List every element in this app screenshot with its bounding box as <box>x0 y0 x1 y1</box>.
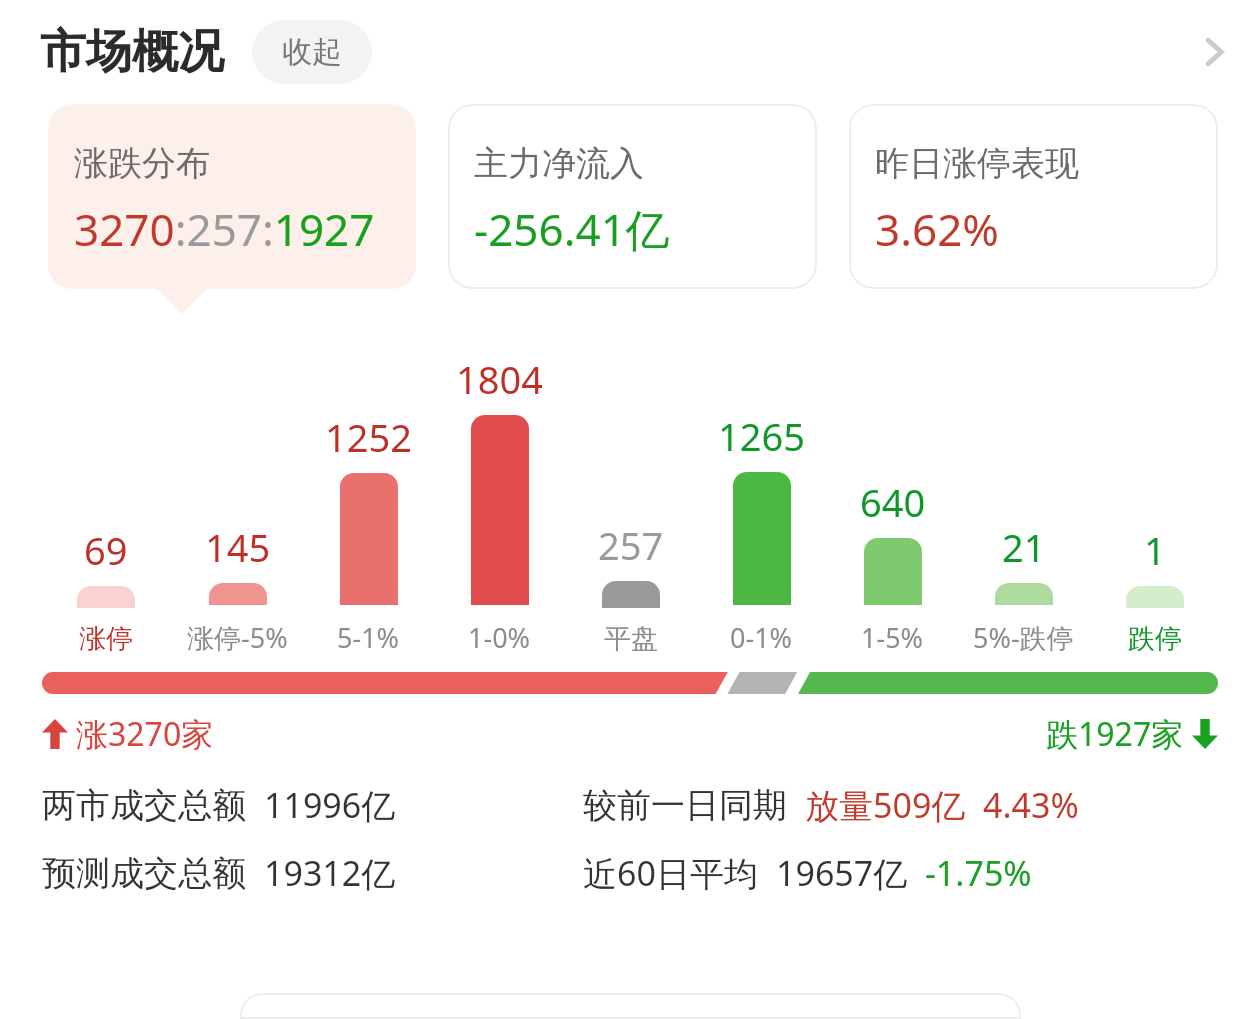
staticText: -256.41亿 <box>474 199 670 259</box>
staticText: 涨跌分布 <box>74 142 210 185</box>
staticText: 跌停 <box>1128 622 1182 656</box>
staticText: 平盘 <box>604 622 658 656</box>
staticText: 145 <box>205 521 271 573</box>
staticText: 市场概况 <box>40 23 224 81</box>
staticText: 3.62% <box>875 199 999 259</box>
staticText: 5-1% <box>337 619 400 656</box>
staticText: 640 <box>860 476 926 528</box>
staticText: 11996亿 <box>264 782 396 828</box>
staticText: 3270:257:1927 <box>74 199 375 259</box>
staticText: 涨停 <box>79 622 133 656</box>
button[interactable]: 查看更多 <box>1178 16 1250 88</box>
staticText: 1252 <box>325 411 412 463</box>
staticText: 21 <box>1002 521 1046 573</box>
staticText: 预测成交总额 <box>42 852 246 895</box>
button[interactable]: 昨日涨停表现 <box>849 104 1218 289</box>
staticText: 两市成交总额 <box>42 784 246 827</box>
staticText: 257 <box>598 519 664 571</box>
staticText: 1-5% <box>861 619 924 656</box>
staticText: 较前一日同期 <box>583 784 787 827</box>
staticText: 收起 <box>282 33 342 71</box>
staticText: 1 <box>1144 524 1166 576</box>
staticText: 19657亿 -1.75% <box>776 850 1032 896</box>
staticText: 1804 <box>456 353 543 405</box>
staticText: 1265 <box>718 410 805 462</box>
staticText: 19312亿 <box>264 850 396 896</box>
staticText: 昨日涨停表现 <box>875 142 1079 185</box>
staticText: 5%-跌停 <box>973 619 1074 656</box>
button[interactable]: 收起 <box>252 20 372 84</box>
staticText: 涨3270家 <box>76 712 214 756</box>
staticText: 1-0% <box>468 619 531 656</box>
staticText: 涨停-5% <box>187 619 288 656</box>
button[interactable] <box>240 993 1021 1019</box>
button[interactable]: 主力净流入 <box>448 104 817 289</box>
staticText: 主力净流入 <box>474 142 644 185</box>
staticText: 近60日平均 <box>583 850 758 896</box>
staticText: 0-1% <box>730 619 793 656</box>
staticText: 69 <box>84 524 128 576</box>
button[interactable]: 涨跌分布 <box>48 104 416 289</box>
staticText: 跌1927家 <box>1046 712 1184 756</box>
staticText: 放量509亿 4.43% <box>805 782 1079 828</box>
